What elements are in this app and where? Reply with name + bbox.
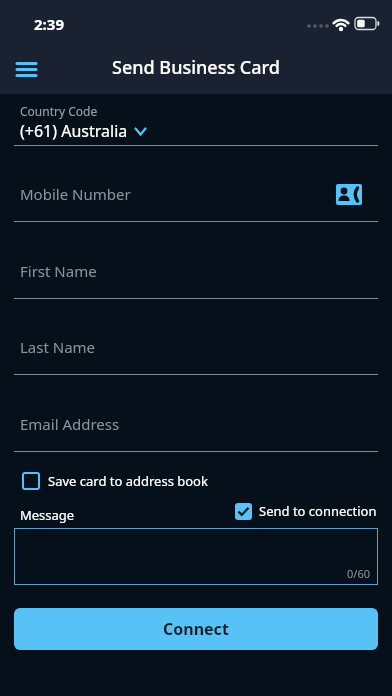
button[interactable]: [14, 397, 378, 451]
staticText: First Name: [20, 261, 97, 281]
staticText: Last Name: [20, 337, 96, 357]
staticText: Message: [20, 506, 75, 524]
button[interactable]: [14, 320, 378, 374]
staticText: Send to connection: [259, 502, 377, 520]
staticText: Email Address: [20, 414, 120, 434]
staticText: Save card to address book: [48, 472, 208, 490]
staticText: (+61) Australia: [20, 120, 128, 142]
button[interactable]: [334, 181, 364, 207]
staticText: Country Code: [20, 103, 98, 119]
button[interactable]: [14, 168, 378, 222]
button[interactable]: Save card to address book: [22, 472, 208, 490]
staticText: Connect: [163, 618, 229, 640]
button[interactable]: [8, 51, 44, 87]
staticText: 0/60: [347, 566, 370, 581]
button[interactable]: Connect: [14, 608, 378, 650]
button[interactable]: 0/60: [14, 528, 378, 585]
button[interactable]: [14, 244, 378, 298]
staticText: Send Business Card: [112, 55, 280, 80]
button[interactable]: Send to connection: [235, 502, 377, 520]
staticText: 2:39: [34, 14, 64, 34]
button[interactable]: (+61) Australia: [20, 120, 146, 142]
staticText: Mobile Number: [20, 184, 131, 204]
